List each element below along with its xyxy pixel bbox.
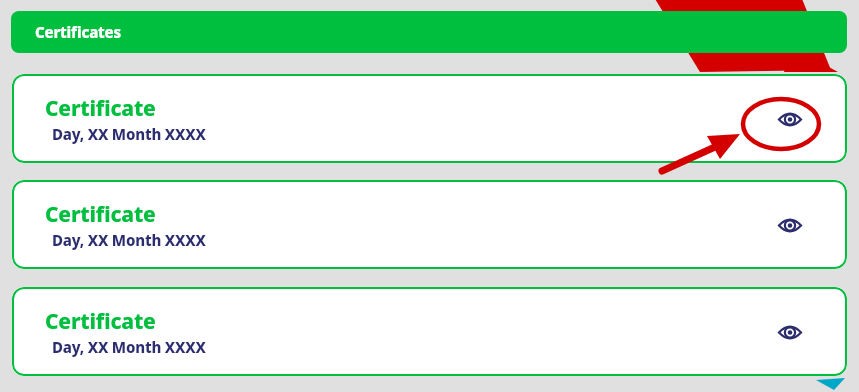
staticText: Certificate [45,307,156,336]
staticText: Day, XX Month XXXX [52,230,206,250]
button[interactable]: Certificate [12,74,847,163]
button[interactable]: Certificate [12,180,847,269]
staticText: Day, XX Month XXXX [52,124,206,144]
staticText: Certificate [45,200,156,229]
staticText: Certificate [45,94,156,123]
button[interactable]: View certificate [775,210,805,240]
button[interactable]: Certificate [12,287,847,376]
staticText: Certificates [35,22,121,42]
button[interactable]: View certificate [775,104,805,134]
button[interactable]: View certificate [775,317,805,347]
staticText: Day, XX Month XXXX [52,337,206,357]
button[interactable]: Certificates [11,11,847,53]
